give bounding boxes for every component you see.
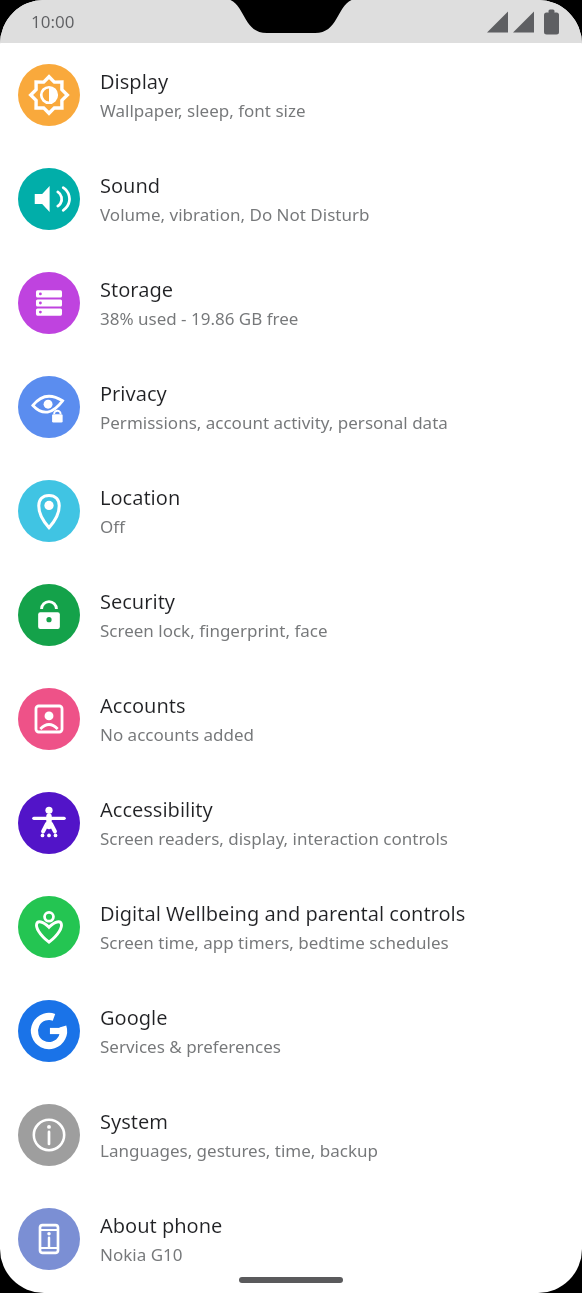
- staticText: Languages, gestures, time, backup: [100, 1139, 379, 1162]
- button[interactable]: Accounts: [0, 667, 582, 771]
- staticText: Sound: [100, 172, 161, 199]
- other: Accessibility: [18, 792, 80, 854]
- staticText: Digital Wellbeing and parental controls: [100, 900, 466, 927]
- button[interactable]: Accessibility: [0, 771, 582, 875]
- staticText: Storage: [100, 276, 173, 303]
- staticText: Off: [100, 515, 125, 538]
- staticText: System: [100, 1108, 168, 1135]
- other: System: [18, 1104, 80, 1166]
- button[interactable]: System: [0, 1083, 582, 1187]
- button[interactable]: Display: [0, 43, 582, 147]
- other: Google: [18, 1000, 80, 1062]
- staticText: Google: [100, 1004, 168, 1031]
- button[interactable]: Digital Wellbeing and parental controls: [0, 875, 582, 979]
- staticText: Screen readers, display, interaction con…: [100, 827, 448, 850]
- button[interactable]: Location: [0, 459, 582, 563]
- staticText: Accessibility: [100, 796, 213, 823]
- other: About phone: [18, 1208, 80, 1270]
- other: Display: [18, 64, 80, 126]
- other: Location: [18, 480, 80, 542]
- staticText: Permissions, account activity, personal …: [100, 411, 448, 434]
- staticText: Accounts: [100, 692, 186, 719]
- staticText: Display: [100, 68, 169, 95]
- staticText: No accounts added: [100, 723, 254, 746]
- other: Digital Wellbeing and parental controls: [18, 896, 80, 958]
- staticText: Services & preferences: [100, 1035, 281, 1058]
- staticText: Privacy: [100, 380, 167, 407]
- other: Security: [18, 584, 80, 646]
- other: Privacy: [18, 376, 80, 438]
- staticText: Wallpaper, sleep, font size: [100, 99, 306, 122]
- button[interactable]: About phone: [0, 1187, 582, 1291]
- button[interactable]: Security: [0, 563, 582, 667]
- staticText: 38% used - 19.86 GB free: [100, 307, 299, 330]
- other: Sound: [18, 168, 80, 230]
- button[interactable]: Sound: [0, 147, 582, 251]
- button[interactable]: Storage: [0, 251, 582, 355]
- other: Storage: [18, 272, 80, 334]
- staticText: Location: [100, 484, 181, 511]
- staticText: Screen lock, fingerprint, face: [100, 619, 328, 642]
- other: Accounts: [18, 688, 80, 750]
- staticText: 10:00: [31, 10, 75, 33]
- button[interactable]: Google: [0, 979, 582, 1083]
- button[interactable]: Privacy: [0, 355, 582, 459]
- staticText: About phone: [100, 1212, 223, 1239]
- staticText: Screen time, app timers, bedtime schedul…: [100, 931, 449, 954]
- staticText: Security: [100, 588, 176, 615]
- staticText: Volume, vibration, Do Not Disturb: [100, 203, 370, 226]
- staticText: Nokia G10: [100, 1243, 183, 1266]
